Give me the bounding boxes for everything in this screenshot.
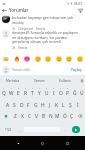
button[interactable]: ?123 xyxy=(1,126,16,133)
staticText: 5 xyxy=(32,87,34,90)
staticText: Yanıtla xyxy=(36,27,46,31)
button[interactable]: İ xyxy=(74,98,81,110)
button[interactable]: Wow emoji xyxy=(76,55,83,62)
staticText: 2h xyxy=(12,27,16,31)
button[interactable]: F xyxy=(25,98,32,110)
staticText: T xyxy=(31,90,34,97)
button[interactable]: Heart eyes emoji xyxy=(23,55,30,62)
button[interactable]: Home xyxy=(36,137,49,150)
button[interactable]: Smiling emoji xyxy=(65,55,72,62)
button[interactable]: Ç xyxy=(68,110,75,122)
button[interactable]: Share xyxy=(76,6,85,14)
button[interactable]: N xyxy=(47,110,54,122)
staticText: Yanıtla xyxy=(18,46,28,50)
staticText: L xyxy=(62,102,65,109)
staticText: Kullanıcı xyxy=(59,79,72,83)
staticText: Z xyxy=(14,113,17,120)
button[interactable]: Ğ xyxy=(71,86,78,98)
button[interactable]: 9 xyxy=(57,86,64,98)
button[interactable]: X xyxy=(19,110,26,122)
staticText: K xyxy=(55,102,59,109)
staticText: N xyxy=(49,113,53,120)
staticText: J xyxy=(49,102,51,109)
staticText: V xyxy=(35,113,38,120)
button[interactable]: Z xyxy=(11,110,19,122)
button[interactable]: 1 xyxy=(0,86,8,98)
button[interactable]: 3 xyxy=(15,86,22,98)
button[interactable]: Ü xyxy=(78,86,85,98)
button[interactable]: Send xyxy=(72,126,80,133)
button[interactable]: 6 xyxy=(36,86,43,98)
button[interactable]: G xyxy=(32,98,39,110)
staticText: Ü xyxy=(80,90,84,97)
staticText: 1 xyxy=(3,87,5,90)
button[interactable]: S xyxy=(11,98,18,110)
button[interactable]: , xyxy=(16,126,23,133)
button[interactable]: Merhaba xyxy=(0,75,26,86)
button[interactable]: Paylaş xyxy=(70,66,83,73)
staticText: Ç xyxy=(70,113,74,120)
button[interactable]: H xyxy=(39,98,46,110)
staticText: 06:57 xyxy=(74,2,83,6)
button[interactable]: Clap emoji xyxy=(2,55,9,62)
staticText: Q xyxy=(2,90,6,97)
button[interactable]: 7 xyxy=(43,86,50,98)
staticText: ?123 xyxy=(5,128,12,132)
staticText: Ş xyxy=(69,102,72,109)
button[interactable]: J xyxy=(46,98,53,110)
button[interactable]: 5 xyxy=(29,86,36,98)
staticText: S xyxy=(13,102,16,109)
staticText: 3 xyxy=(18,87,20,90)
button[interactable]: bu kadar kaymayı geri istiyorum çok müth… xyxy=(0,15,85,31)
staticText: D xyxy=(20,102,24,109)
staticText: 4 xyxy=(25,87,27,90)
staticText: P xyxy=(66,90,69,97)
staticText: Yorum ekle... xyxy=(12,67,70,72)
button[interactable]: Surprised emoji xyxy=(34,55,41,62)
staticText: İ xyxy=(77,102,79,109)
button[interactable]: Fire emoji xyxy=(13,55,20,62)
staticText: F xyxy=(27,102,30,109)
staticText: bu kadar kaymayı geri istiyorum çok müth… xyxy=(12,15,83,25)
button[interactable]: 8 xyxy=(50,86,57,98)
staticText: R xyxy=(24,90,28,97)
button[interactable]: V xyxy=(33,110,40,122)
staticText: 8 xyxy=(53,87,55,90)
button[interactable]: 4 xyxy=(22,86,29,98)
button[interactable]: Tamam xyxy=(26,75,52,86)
staticText: C xyxy=(28,113,32,120)
staticText: M xyxy=(55,113,60,120)
button[interactable]: Ö xyxy=(61,110,68,122)
button[interactable]: Kullanıcı xyxy=(52,75,78,86)
staticText: Tamam xyxy=(34,79,45,83)
button[interactable]: Backspace xyxy=(75,110,85,122)
staticText: Yorumlar xyxy=(9,7,29,13)
button[interactable]: D xyxy=(18,98,25,110)
button[interactable]: C xyxy=(26,110,33,122)
button[interactable]: Shift xyxy=(0,110,11,122)
button[interactable]: Voice input xyxy=(78,75,85,86)
button[interactable]: Sad emoji xyxy=(55,55,62,62)
button[interactable]: Ş xyxy=(67,98,74,110)
button[interactable]: 0 xyxy=(64,86,71,98)
staticText: A xyxy=(6,102,10,109)
staticText: 2 xyxy=(11,87,13,90)
button[interactable]: M xyxy=(54,110,61,122)
button[interactable]: B xyxy=(40,110,47,122)
staticText: Paylaş xyxy=(71,67,82,72)
button[interactable]: Recents xyxy=(61,137,74,150)
button[interactable]: Laughing emoji xyxy=(44,55,51,62)
staticText: destiyer45 Sonuçlu etkinlik ve paylaşım … xyxy=(12,30,83,44)
button[interactable]: Back xyxy=(12,137,25,150)
staticText: 6 xyxy=(39,87,41,90)
button[interactable]: Back xyxy=(0,6,9,14)
button[interactable]: A xyxy=(4,98,11,110)
button[interactable]: destiyer45 Sonuçlu etkinlik ve paylaşım … xyxy=(0,30,85,50)
button[interactable]: K xyxy=(53,98,60,110)
button[interactable]: 2 xyxy=(8,86,15,98)
button[interactable]: L xyxy=(60,98,67,110)
staticText: , xyxy=(19,127,20,132)
staticText: 7 xyxy=(46,87,48,90)
